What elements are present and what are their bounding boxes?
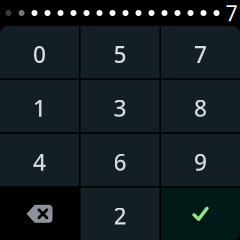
staticText: 5 xyxy=(113,39,126,69)
button[interactable]: 8 xyxy=(161,80,240,132)
staticText: 0 xyxy=(33,39,46,69)
staticText: 3 xyxy=(113,93,126,123)
staticText: 8 xyxy=(194,93,207,123)
button[interactable]: 2 xyxy=(80,188,159,240)
staticText: 2 xyxy=(113,201,126,231)
button[interactable]: 6 xyxy=(80,134,159,186)
staticText: 1 xyxy=(33,93,46,123)
button[interactable]: 3 xyxy=(80,80,159,132)
button[interactable]: 9 xyxy=(161,134,240,186)
button[interactable]: Confirm xyxy=(161,188,240,240)
staticText: 6 xyxy=(113,147,126,177)
button[interactable]: 7 xyxy=(161,26,240,78)
staticText: 9 xyxy=(194,147,207,177)
button[interactable]: 4 xyxy=(0,134,79,186)
staticText: 7 xyxy=(225,0,237,27)
button[interactable]: 5 xyxy=(80,26,159,78)
button[interactable]: 1 xyxy=(0,80,79,132)
staticText: 4 xyxy=(33,147,46,177)
staticText: 7 xyxy=(194,39,207,69)
button[interactable]: 0 xyxy=(0,26,79,78)
button[interactable]: Delete xyxy=(0,188,79,240)
